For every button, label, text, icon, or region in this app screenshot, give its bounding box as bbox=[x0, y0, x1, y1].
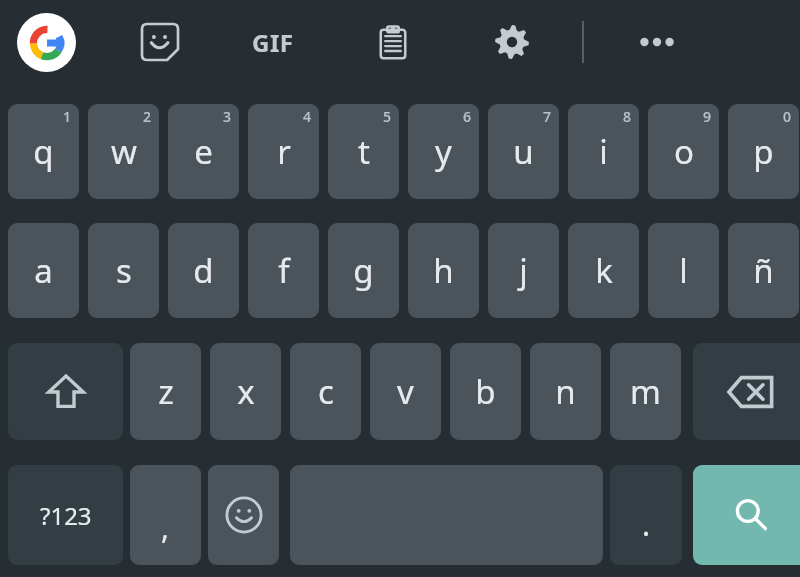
button[interactable]: o bbox=[648, 104, 719, 199]
button[interactable]: t bbox=[328, 104, 399, 199]
staticText: y bbox=[435, 129, 452, 174]
button[interactable]: f bbox=[248, 223, 319, 318]
staticText: q bbox=[33, 129, 54, 174]
button[interactable]: g bbox=[328, 223, 399, 318]
staticText: 5 bbox=[383, 107, 392, 126]
button[interactable]: i bbox=[568, 104, 639, 199]
button[interactable]: Emoji bbox=[208, 465, 279, 565]
button[interactable]: a bbox=[8, 223, 79, 318]
button[interactable]: h bbox=[408, 223, 479, 318]
staticText: d bbox=[193, 248, 214, 293]
staticText: , bbox=[161, 507, 170, 548]
staticText: s bbox=[116, 248, 132, 293]
button[interactable]: u bbox=[488, 104, 559, 199]
button[interactable]: l bbox=[648, 223, 719, 318]
button[interactable]: ?123 bbox=[8, 465, 123, 565]
button[interactable]: r bbox=[248, 104, 319, 199]
button[interactable]: GIF bbox=[243, 16, 303, 68]
button[interactable]: w bbox=[88, 104, 159, 199]
button[interactable]: , bbox=[130, 465, 201, 565]
button[interactable]: Settings bbox=[486, 16, 538, 68]
button[interactable]: x bbox=[210, 343, 281, 440]
button[interactable]: ñ bbox=[728, 223, 799, 318]
button[interactable]: z bbox=[130, 343, 201, 440]
staticText: . bbox=[642, 504, 651, 545]
staticText: 7 bbox=[543, 107, 552, 126]
staticText: c bbox=[318, 369, 334, 414]
button[interactable]: q bbox=[8, 104, 79, 199]
staticText: h bbox=[433, 248, 454, 293]
staticText: 3 bbox=[223, 107, 232, 126]
button[interactable]: m bbox=[610, 343, 681, 440]
button[interactable]: b bbox=[450, 343, 521, 440]
button[interactable]: s bbox=[88, 223, 159, 318]
button[interactable]: Clipboard bbox=[367, 16, 419, 68]
staticText: 2 bbox=[143, 107, 152, 126]
button[interactable]: More options bbox=[631, 16, 683, 68]
staticText: l bbox=[679, 248, 688, 293]
button[interactable]: v bbox=[370, 343, 441, 440]
staticText: 6 bbox=[463, 107, 472, 126]
staticText: 9 bbox=[703, 107, 712, 126]
staticText: b bbox=[475, 369, 496, 414]
button[interactable]: Shift bbox=[8, 343, 123, 440]
staticText: v bbox=[397, 369, 414, 414]
button[interactable]: j bbox=[488, 223, 559, 318]
button[interactable]: e bbox=[168, 104, 239, 199]
staticText: w bbox=[111, 129, 137, 174]
staticText: i bbox=[599, 129, 608, 174]
staticText: x bbox=[237, 369, 255, 414]
button[interactable]: c bbox=[290, 343, 361, 440]
staticText: 0 bbox=[783, 107, 792, 126]
button[interactable]: d bbox=[168, 223, 239, 318]
staticText: z bbox=[158, 369, 174, 414]
staticText: j bbox=[519, 248, 528, 293]
staticText: k bbox=[595, 248, 613, 293]
button[interactable]: p bbox=[728, 104, 799, 199]
staticText: ?123 bbox=[40, 499, 92, 532]
button[interactable]: Search bbox=[693, 465, 800, 565]
staticText: a bbox=[34, 248, 53, 293]
staticText: t bbox=[358, 129, 370, 174]
button[interactable]: Backspace bbox=[693, 343, 800, 440]
staticText: r bbox=[277, 129, 291, 174]
button[interactable]: Google bbox=[17, 13, 76, 72]
staticText: o bbox=[674, 129, 694, 174]
staticText: 1 bbox=[63, 107, 72, 126]
staticText: n bbox=[555, 369, 576, 414]
staticText: g bbox=[353, 248, 374, 293]
staticText: u bbox=[513, 129, 534, 174]
staticText: e bbox=[194, 129, 213, 174]
staticText: m bbox=[630, 369, 661, 414]
button[interactable]: Stickers bbox=[134, 16, 186, 68]
staticText: 4 bbox=[303, 107, 312, 126]
button[interactable]: . bbox=[610, 465, 682, 565]
button[interactable]: k bbox=[568, 223, 639, 318]
staticText: p bbox=[753, 129, 774, 174]
staticText: GIF bbox=[252, 26, 294, 59]
staticText: ñ bbox=[753, 248, 774, 293]
button[interactable]: n bbox=[530, 343, 601, 440]
button[interactable]: y bbox=[408, 104, 479, 199]
staticText: f bbox=[278, 248, 290, 293]
staticText: 8 bbox=[623, 107, 632, 126]
